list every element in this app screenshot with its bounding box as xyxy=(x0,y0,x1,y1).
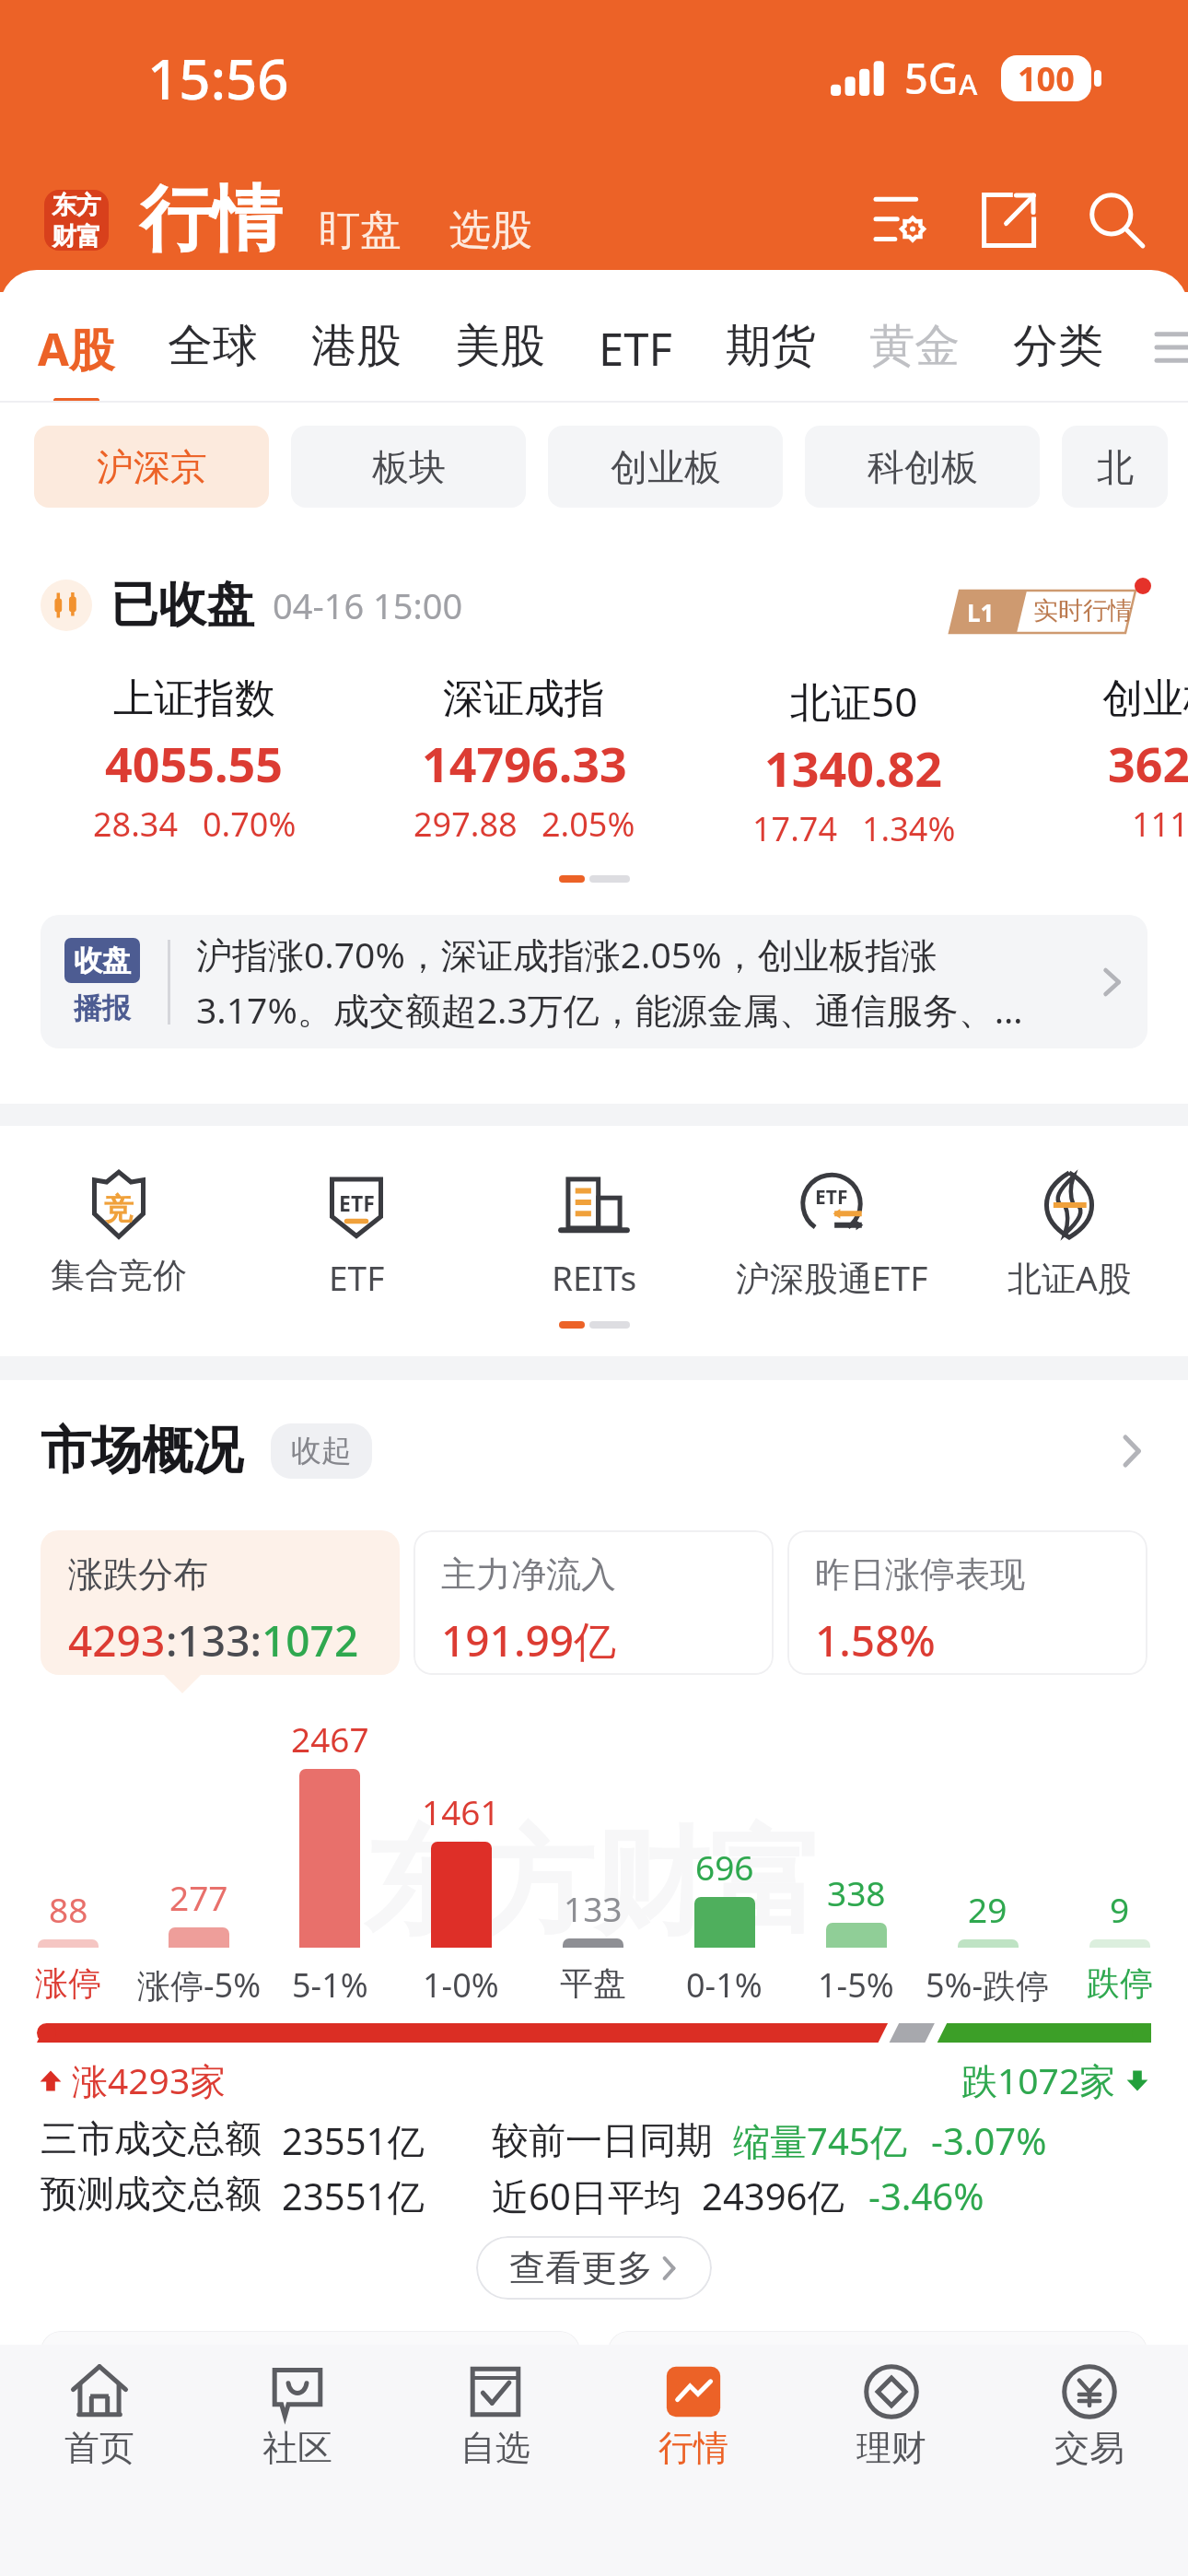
staticText: 创业板 xyxy=(611,444,721,490)
button[interactable]: 港股 xyxy=(311,270,455,375)
staticText: 5%-跌停 xyxy=(926,1962,1050,2008)
staticText: 自选 xyxy=(460,2426,530,2470)
button[interactable]: 深证成指 xyxy=(359,673,689,844)
button[interactable]: 收起 xyxy=(271,1423,372,1479)
staticText: 全球 xyxy=(168,318,258,375)
staticText: 1340.82 xyxy=(764,735,943,801)
staticText: -3.46% xyxy=(868,2171,984,2220)
button[interactable]: 查看更多 xyxy=(476,2236,712,2300)
staticText: 1461 xyxy=(422,1788,500,1834)
button[interactable]: 创业板 xyxy=(548,426,783,508)
staticText: 133 xyxy=(564,1885,623,1931)
staticText: A股 xyxy=(38,318,114,380)
button[interactable]: 上证指数 xyxy=(29,673,359,844)
staticText: ETF xyxy=(815,1184,848,1211)
staticText: 2467 xyxy=(291,1715,369,1762)
staticText: 111.31 xyxy=(1132,802,1188,844)
staticText: 4055.55 xyxy=(105,731,284,796)
button[interactable]: 收盘 xyxy=(41,915,1147,1048)
staticText: 行情 xyxy=(658,2426,728,2470)
staticText: 1072 xyxy=(262,1611,359,1669)
staticText: L1 xyxy=(967,596,995,628)
staticText: 涨停-5% xyxy=(137,1962,262,2008)
button[interactable]: 理财 xyxy=(792,2361,990,2470)
button[interactable]: Share xyxy=(980,192,1037,249)
button[interactable]: More xyxy=(1111,1431,1151,1471)
button[interactable]: 北 xyxy=(1062,426,1168,508)
staticText: 5G xyxy=(904,50,959,106)
staticText: 社区 xyxy=(262,2426,332,2470)
staticText: REITs xyxy=(552,1254,637,1300)
staticText: 三市成交总额 xyxy=(41,2115,262,2161)
button[interactable]: 创业板指 xyxy=(1019,673,1188,844)
staticText: 理财 xyxy=(856,2426,926,2470)
button[interactable]: 北证A股 xyxy=(950,1169,1188,1301)
button[interactable]: 昨日涨停表现 xyxy=(787,1530,1147,1675)
button[interactable]: 行情 xyxy=(594,2361,792,2470)
button[interactable]: 竞 xyxy=(0,1169,238,1297)
staticText: 实时行情 xyxy=(1033,595,1133,626)
button[interactable]: 主力净流入 xyxy=(413,1530,774,1675)
button[interactable]: 首页 xyxy=(0,2361,198,2470)
staticText: 东方 xyxy=(52,190,101,221)
button[interactable]: 板块 xyxy=(291,426,526,508)
button[interactable]: 选股 xyxy=(449,182,532,257)
staticText: 沪深股通ETF xyxy=(736,1254,928,1301)
staticText: 23551亿 xyxy=(282,2171,425,2221)
staticText: 0-1% xyxy=(686,1962,763,2008)
button[interactable]: 盯盘 xyxy=(319,182,402,257)
button[interactable]: ETF xyxy=(713,1169,950,1301)
staticText: 28.34 xyxy=(93,802,179,844)
staticText: 04-16 15:00 xyxy=(273,581,463,629)
staticText: 深证成指 xyxy=(443,673,605,724)
button[interactable]: 科创板 xyxy=(805,426,1040,508)
staticText: 3626.1 xyxy=(1108,731,1188,796)
staticText: 黄金 xyxy=(869,318,960,375)
staticText: 平盘 xyxy=(560,1962,626,2004)
staticText: 近60日平均 xyxy=(492,2171,681,2221)
button[interactable]: 美股 xyxy=(455,270,599,375)
staticText: 1-5% xyxy=(818,1962,894,2008)
staticText: 23551亿 xyxy=(282,2115,425,2166)
button[interactable]: A股 xyxy=(38,270,168,403)
staticText: 播报 xyxy=(74,990,131,1026)
staticText: 跌1072家 xyxy=(961,2055,1116,2104)
button[interactable]: Search xyxy=(1089,192,1146,249)
button[interactable]: ETF xyxy=(238,1169,475,1300)
staticText: 沪深京 xyxy=(97,444,207,490)
staticText: 缩量745亿 xyxy=(733,2115,907,2166)
button[interactable]: 期货 xyxy=(726,270,869,375)
button[interactable]: More tabs xyxy=(1157,270,1188,318)
staticText: 已收盘 xyxy=(111,575,254,636)
button[interactable]: 北证50 xyxy=(689,673,1019,844)
button[interactable]: 社区 xyxy=(198,2361,396,2470)
button[interactable]: REITs xyxy=(475,1169,713,1300)
staticText: 29 xyxy=(968,1886,1007,1932)
button[interactable]: ETF xyxy=(599,270,726,380)
staticText: 行情 xyxy=(140,175,282,264)
staticText: 涨4293家 xyxy=(72,2055,227,2104)
staticText: 分类 xyxy=(1013,318,1103,375)
button[interactable]: 全球 xyxy=(168,270,311,375)
button[interactable]: 交易 xyxy=(990,2361,1188,2470)
button[interactable]: 沪深京 xyxy=(34,426,269,508)
staticText: 涨停 xyxy=(35,1962,101,2004)
staticText: 查看更多 xyxy=(509,2245,653,2290)
staticText: 预测成交总额 xyxy=(41,2171,262,2217)
button[interactable]: 自选 xyxy=(396,2361,594,2470)
button[interactable]: Filter settings xyxy=(873,192,930,249)
button[interactable]: 黄金 xyxy=(869,270,1013,375)
button[interactable]: 涨跌分布 xyxy=(41,1530,400,1675)
staticText: 277 xyxy=(169,1874,228,1920)
staticText: 上证指数 xyxy=(113,673,275,724)
staticText: 338 xyxy=(827,1869,886,1915)
staticText: 竞 xyxy=(104,1190,134,1227)
staticText: 收盘 xyxy=(74,943,131,978)
staticText: A xyxy=(959,64,978,103)
staticText: ETF xyxy=(329,1254,385,1300)
staticText: 沪指涨0.70%，深证成指涨2.05%，创业板指涨 3.17%。成交额超2.3万… xyxy=(196,930,1090,1034)
staticText: 24396亿 xyxy=(702,2171,844,2221)
staticText: 17.74 xyxy=(752,806,838,844)
staticText: 1.34% xyxy=(862,806,956,844)
button[interactable]: 分类 xyxy=(1013,270,1157,375)
